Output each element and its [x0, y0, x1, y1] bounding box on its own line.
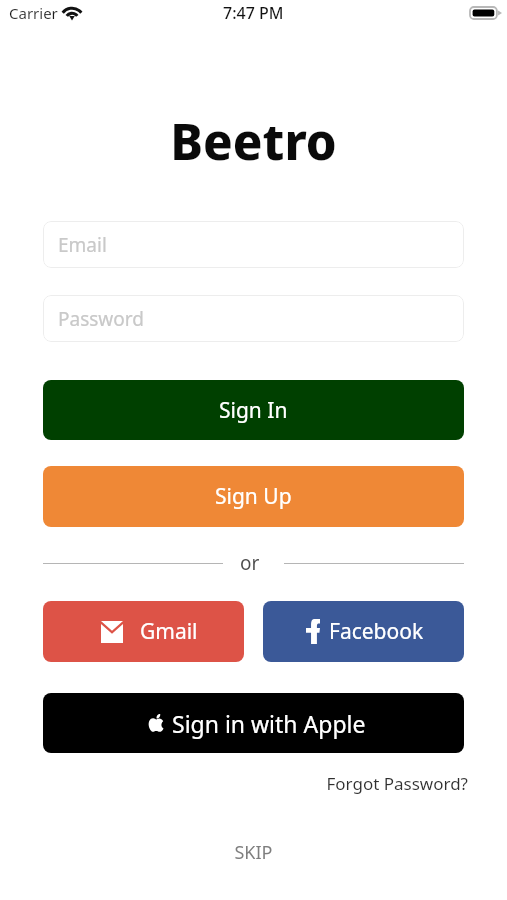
staticText: Carrier — [9, 3, 58, 23]
staticText: 7:47 PM — [223, 2, 284, 24]
button[interactable]: Email — [43, 221, 464, 268]
button[interactable]: Sign in with Apple — [43, 693, 464, 753]
staticText: Email — [58, 232, 107, 258]
staticText: Beetro — [0, 108, 507, 175]
staticText: or — [240, 550, 260, 576]
staticText: Facebook — [329, 617, 424, 646]
button[interactable]: Facebook — [263, 601, 464, 662]
staticText: Password — [58, 306, 144, 332]
staticText: Sign In — [219, 396, 288, 425]
staticText: Sign Up — [215, 482, 292, 511]
staticText: Gmail — [140, 617, 198, 646]
button[interactable]: SKIP — [234, 840, 273, 865]
button[interactable]: Sign Up — [43, 466, 464, 527]
button[interactable]: Forgot Password? — [326, 772, 468, 795]
button[interactable]: Gmail — [43, 601, 244, 662]
button[interactable]: Password — [43, 295, 464, 342]
button[interactable]: Sign In — [43, 380, 464, 440]
staticText: Sign in with Apple — [172, 708, 366, 739]
